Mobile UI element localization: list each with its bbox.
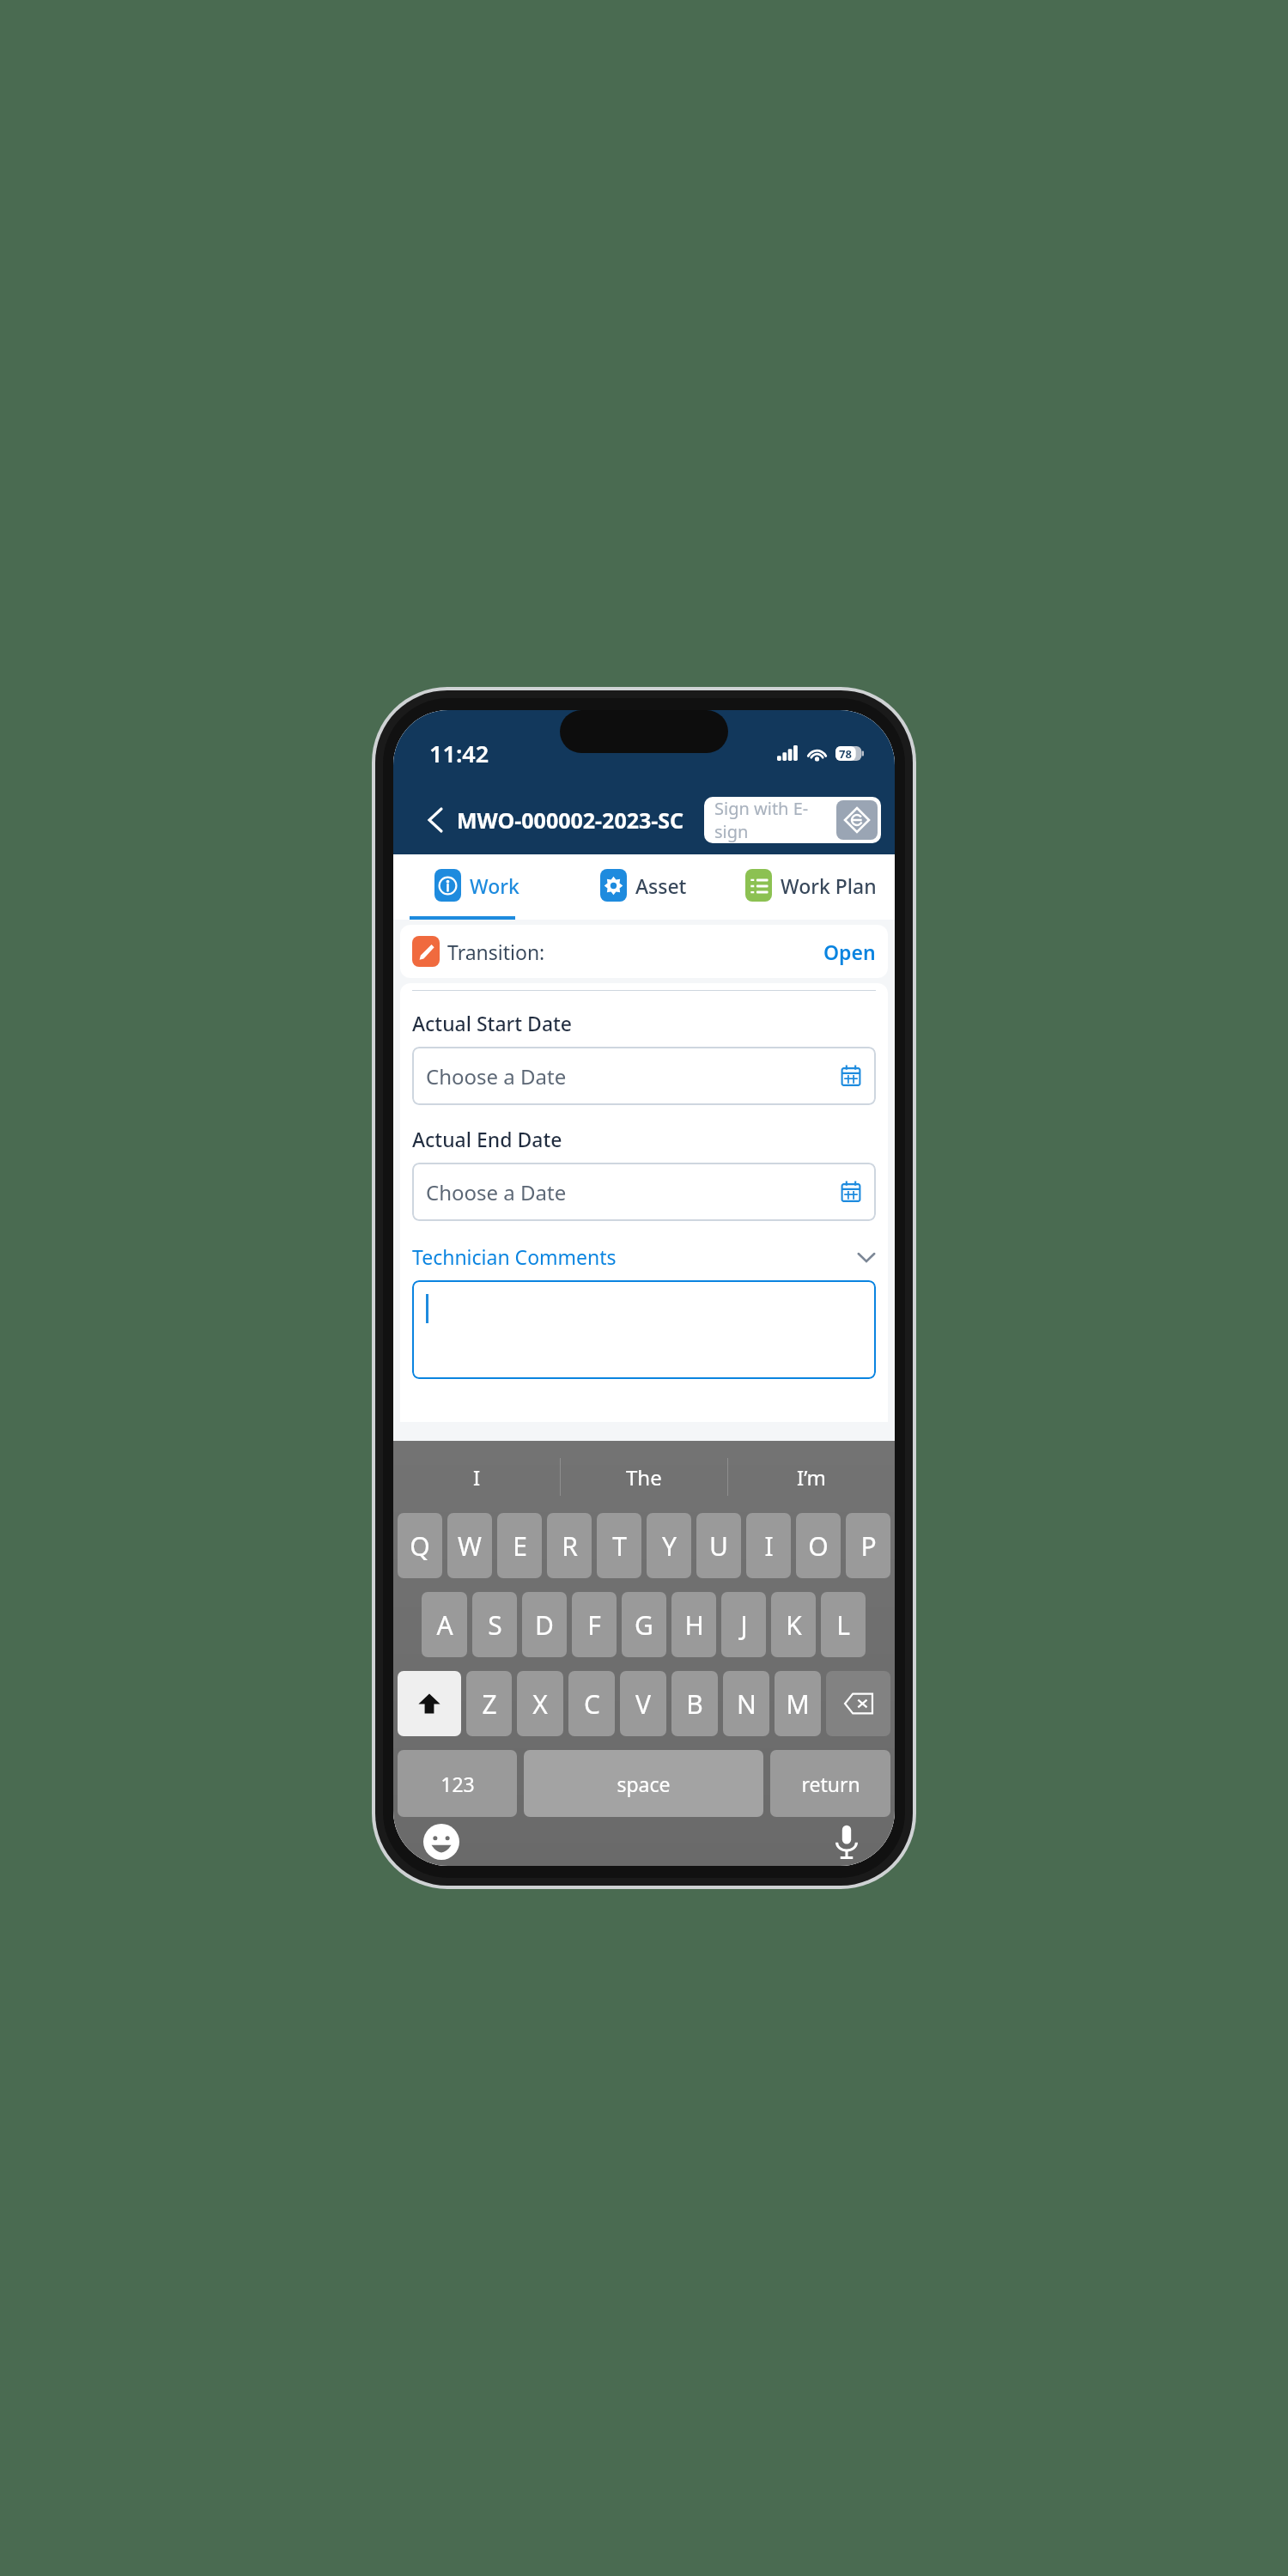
other: Pick date: [840, 1065, 862, 1087]
button[interactable]: V: [620, 1671, 666, 1736]
button[interactable]: R: [547, 1513, 592, 1578]
staticText: I: [473, 1463, 481, 1492]
staticText: Y: [662, 1528, 677, 1564]
button[interactable]: U: [696, 1513, 741, 1578]
staticText: M: [786, 1686, 810, 1722]
button[interactable]: P: [846, 1513, 890, 1578]
button[interactable]: return: [770, 1750, 890, 1817]
button[interactable]: L: [821, 1592, 866, 1657]
staticText: Work: [470, 872, 519, 899]
staticText: F: [587, 1607, 601, 1643]
button[interactable]: I: [393, 1441, 560, 1513]
button[interactable]: The: [561, 1441, 727, 1513]
button[interactable]: M: [775, 1671, 821, 1736]
staticText: Transition:: [447, 939, 545, 965]
button[interactable]: B: [671, 1671, 718, 1736]
staticText: V: [635, 1686, 651, 1722]
staticText: X: [532, 1686, 548, 1722]
staticText: Sign with E-sign: [714, 797, 836, 843]
button[interactable]: Transition:: [400, 925, 888, 978]
other: Pick date: [840, 1181, 862, 1203]
staticText: Q: [410, 1528, 430, 1564]
staticText: Z: [482, 1686, 497, 1722]
button[interactable]: H: [671, 1592, 716, 1657]
button[interactable]: Backspace: [826, 1671, 890, 1736]
staticText: MWO-000002-2023-SC: [457, 805, 684, 835]
staticText: I: [764, 1528, 774, 1564]
button[interactable]: F: [572, 1592, 617, 1657]
other: Collapse: [857, 1248, 876, 1267]
button[interactable]: Shift: [398, 1671, 461, 1736]
button[interactable]: Work: [393, 854, 560, 916]
button[interactable]: 123: [398, 1750, 517, 1817]
staticText: S: [488, 1607, 502, 1643]
staticText: G: [635, 1607, 653, 1643]
staticText: space: [617, 1771, 671, 1797]
staticText: B: [686, 1686, 703, 1722]
button[interactable]: Z: [466, 1671, 512, 1736]
staticText: R: [562, 1528, 578, 1564]
button[interactable]: Y: [647, 1513, 691, 1578]
button[interactable]: E: [497, 1513, 542, 1578]
staticText: L: [836, 1607, 850, 1643]
staticText: return: [801, 1771, 860, 1797]
button[interactable]: space: [524, 1750, 763, 1817]
staticText: Actual Start Date: [412, 1010, 573, 1036]
button[interactable]: I’m: [728, 1441, 895, 1513]
staticText: A: [436, 1607, 453, 1643]
staticText: J: [740, 1607, 748, 1643]
button[interactable]: Sign with E-sign: [704, 797, 881, 843]
staticText: Choose a Date: [426, 1062, 567, 1091]
button[interactable]: Choose a Date: [412, 1163, 876, 1221]
staticText: D: [535, 1607, 554, 1643]
button[interactable]: N: [723, 1671, 769, 1736]
staticText: C: [584, 1686, 600, 1722]
staticText: 78: [839, 746, 852, 761]
staticText: Actual End Date: [412, 1126, 562, 1152]
button[interactable]: [412, 1280, 876, 1379]
staticText: E: [513, 1528, 527, 1564]
button[interactable]: Q: [398, 1513, 442, 1578]
button[interactable]: K: [771, 1592, 816, 1657]
button[interactable]: Back: [421, 805, 450, 835]
staticText: Asset: [635, 872, 687, 899]
button[interactable]: T: [597, 1513, 641, 1578]
staticText: Choose a Date: [426, 1178, 567, 1206]
button[interactable]: A: [422, 1592, 467, 1657]
staticText: 123: [440, 1771, 475, 1797]
staticText: N: [737, 1686, 756, 1722]
staticText: O: [808, 1528, 829, 1564]
staticText: Work Plan: [781, 872, 877, 899]
button[interactable]: C: [568, 1671, 615, 1736]
button[interactable]: G: [622, 1592, 666, 1657]
staticText: P: [860, 1528, 877, 1564]
staticText: U: [709, 1528, 728, 1564]
staticText: K: [786, 1607, 802, 1643]
staticText: T: [612, 1528, 627, 1564]
button[interactable]: J: [721, 1592, 766, 1657]
button[interactable]: Work Plan: [727, 854, 895, 916]
staticText: 11:42: [429, 738, 489, 769]
button[interactable]: Asset: [560, 854, 727, 916]
button[interactable]: S: [472, 1592, 517, 1657]
staticText: I’m: [797, 1463, 827, 1492]
staticText: Open: [823, 939, 876, 965]
staticText: W: [458, 1528, 482, 1564]
button[interactable]: Choose a Date: [412, 1047, 876, 1105]
staticText: H: [684, 1607, 704, 1643]
staticText: Technician Comments: [412, 1243, 617, 1270]
button[interactable]: O: [796, 1513, 841, 1578]
button[interactable]: Technician Comments: [412, 1243, 876, 1270]
button[interactable]: D: [522, 1592, 567, 1657]
staticText: The: [626, 1463, 662, 1492]
button[interactable]: W: [447, 1513, 492, 1578]
button[interactable]: Dictation: [823, 1818, 871, 1866]
button[interactable]: Emoji: [417, 1818, 465, 1866]
button[interactable]: I: [746, 1513, 791, 1578]
button[interactable]: X: [517, 1671, 563, 1736]
